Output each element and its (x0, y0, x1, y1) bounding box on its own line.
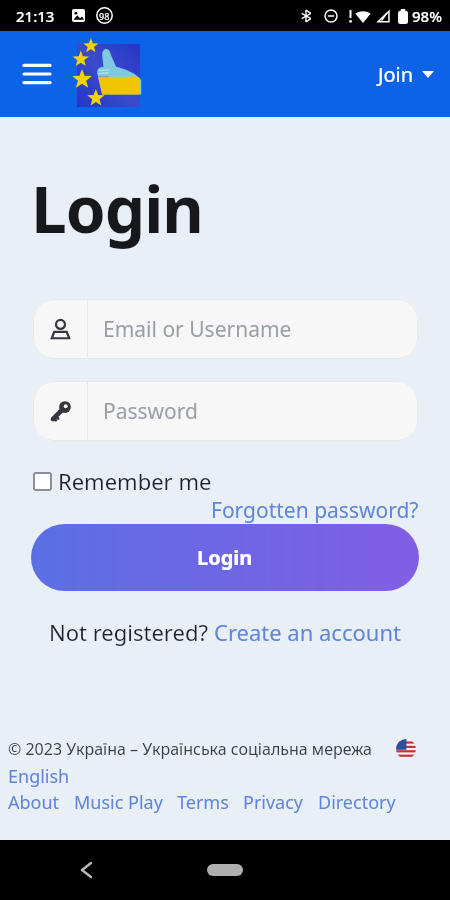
button[interactable]: Language (396, 739, 416, 759)
button[interactable]: Privacy (243, 790, 304, 815)
button[interactable]: Create an account (214, 617, 401, 647)
staticText: Email or Username (103, 315, 292, 344)
button[interactable]: Directory (318, 790, 396, 815)
staticText: Remember me (58, 466, 212, 496)
staticText: Join (378, 61, 414, 88)
button[interactable]: Menu (24, 64, 50, 84)
button[interactable]: Forgotten password? (211, 496, 419, 525)
button[interactable]: English (8, 764, 70, 789)
button[interactable]: Remember me (33, 466, 212, 496)
button[interactable]: Email or Username (33, 299, 418, 359)
staticText: Login (31, 165, 203, 252)
button[interactable]: About (8, 790, 60, 815)
staticText: 98 (99, 10, 110, 22)
staticText: Login (197, 544, 253, 571)
staticText: 21:13 (16, 6, 55, 26)
staticText: © 2023 Україна – Українська соціальна ме… (8, 738, 372, 760)
staticText: 98% (412, 6, 442, 26)
staticText: Not registered? (49, 617, 214, 647)
button[interactable]: Back (82, 863, 91, 877)
button[interactable]: Terms (177, 790, 229, 815)
staticText: Password (103, 397, 198, 426)
button[interactable]: Join (378, 61, 434, 88)
button[interactable]: Login (31, 524, 419, 591)
button[interactable]: Password (33, 381, 418, 441)
button[interactable]: Music Play (74, 790, 163, 815)
button[interactable]: Home (207, 864, 243, 876)
